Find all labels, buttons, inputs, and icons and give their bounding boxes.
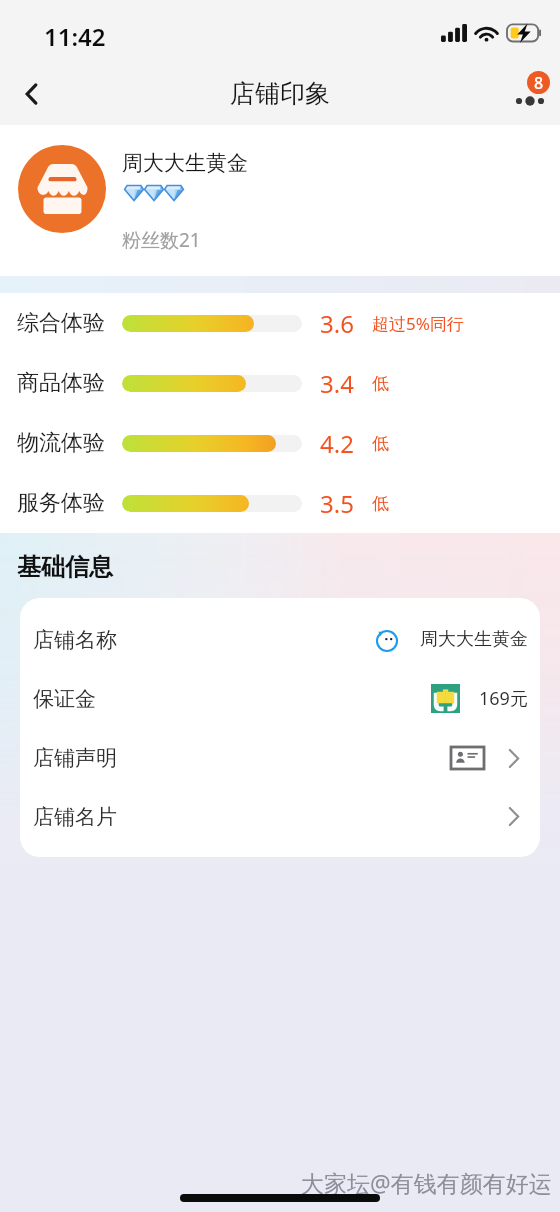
- staticText: 周大大生黄金: [122, 150, 248, 176]
- staticText: 169元: [479, 686, 528, 711]
- staticText: 低: [372, 373, 389, 394]
- staticText: 粉丝数21: [122, 227, 201, 253]
- staticText: 超过5%同行: [372, 312, 464, 335]
- button[interactable]: Back: [4, 62, 60, 125]
- staticText: 商品体验: [17, 369, 105, 397]
- button[interactable]: 保证金: [20, 669, 540, 728]
- staticText: 周大大生黄金: [420, 628, 528, 651]
- button[interactable]: More options: [496, 62, 560, 125]
- staticText: 3.4: [320, 367, 354, 400]
- staticText: 服务体验: [17, 489, 105, 517]
- staticText: 保证金: [33, 686, 96, 712]
- button[interactable]: 店铺声明: [20, 728, 540, 787]
- staticText: 低: [372, 433, 389, 454]
- staticText: 3.5: [320, 487, 354, 520]
- staticText: 店铺名称: [33, 627, 117, 653]
- staticText: 8: [534, 72, 544, 94]
- staticText: 店铺声明: [33, 745, 117, 771]
- staticText: 低: [372, 493, 389, 514]
- staticText: 11:42: [44, 20, 106, 53]
- staticText: 基础信息: [17, 552, 113, 582]
- staticText: 综合体验: [17, 309, 105, 337]
- staticText: 店铺印象: [230, 78, 330, 109]
- staticText: 4.2: [320, 427, 354, 460]
- staticText: 3.6: [320, 307, 354, 340]
- button[interactable]: 店铺名片: [20, 787, 540, 846]
- staticText: 店铺名片: [33, 804, 117, 830]
- staticText: 大家坛@有钱有颜有好运: [301, 1167, 552, 1198]
- button[interactable]: 店铺名称: [20, 610, 540, 669]
- staticText: 物流体验: [17, 429, 105, 457]
